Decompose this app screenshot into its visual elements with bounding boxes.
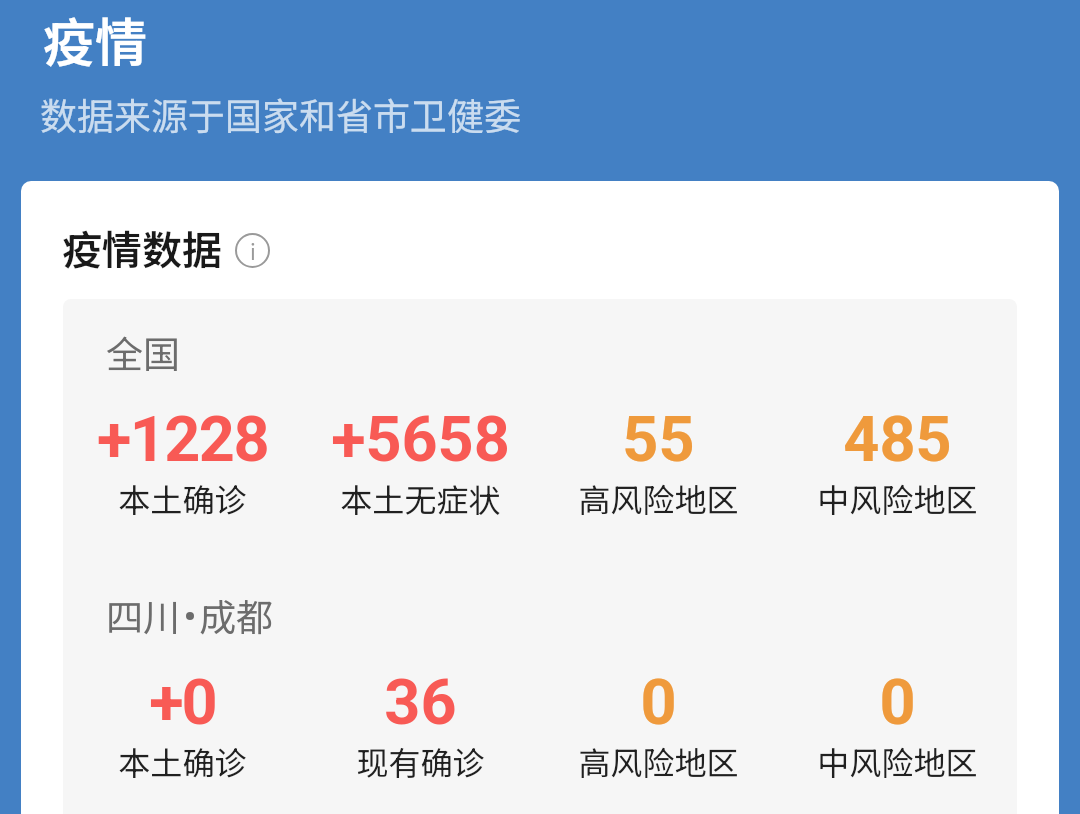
staticText: +1228	[97, 403, 268, 477]
button[interactable]: 36	[301, 655, 539, 775]
staticText: 本土无症状	[340, 475, 501, 521]
staticText: +5658	[331, 403, 510, 477]
button[interactable]: 485	[778, 392, 1017, 512]
staticText: 高风险地区	[578, 475, 739, 521]
staticText: 0	[879, 666, 916, 740]
staticText: 0	[640, 666, 677, 740]
staticText: 36	[384, 666, 457, 740]
staticText: 成都	[199, 588, 273, 642]
button[interactable]: 0	[539, 655, 778, 775]
staticText: 中风险地区	[817, 738, 978, 784]
staticText: 四川	[106, 588, 180, 642]
button[interactable]: 关于疫情数据 Info	[235, 233, 270, 268]
button[interactable]: 0	[778, 655, 1017, 775]
staticText: +0	[149, 666, 216, 740]
staticText: 本土确诊	[118, 475, 247, 521]
staticText: 中风险地区	[817, 475, 978, 521]
staticText: 疫情数据	[62, 219, 222, 277]
staticText: i	[250, 236, 256, 266]
staticText: 现有确诊	[356, 738, 485, 784]
staticText: 本土确诊	[118, 738, 247, 784]
button[interactable]: +0	[63, 655, 301, 775]
staticText: 55	[622, 403, 695, 477]
staticText: 数据来源于国家和省市卫健委	[40, 87, 521, 141]
button[interactable]: +5658	[301, 392, 539, 512]
staticText: 疫情	[43, 2, 148, 77]
staticText: 高风险地区	[578, 738, 739, 784]
button[interactable]: 55	[539, 392, 778, 512]
staticText: 全国	[106, 325, 180, 379]
staticText: 485	[843, 403, 952, 477]
button[interactable]: +1228	[63, 392, 301, 512]
